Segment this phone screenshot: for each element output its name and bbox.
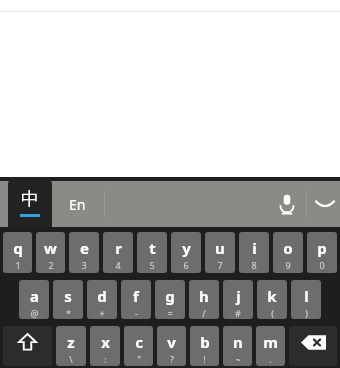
button[interactable]: p (307, 232, 337, 273)
button[interactable]: h (189, 280, 219, 319)
staticText: x (101, 332, 110, 352)
staticText: 0 (319, 259, 325, 271)
staticText: n (233, 332, 243, 352)
button[interactable]: y (171, 232, 201, 273)
staticText: = (167, 307, 173, 319)
button[interactable]: f (121, 280, 151, 319)
staticText: En (69, 195, 86, 214)
staticText: g (165, 286, 175, 306)
button[interactable]: Hide keyboard (310, 181, 340, 227)
staticText: ( (271, 307, 274, 319)
button[interactable]: x (90, 326, 120, 366)
staticText: j (236, 286, 241, 306)
staticText: u (215, 238, 225, 258)
staticText: 中 (21, 188, 39, 211)
staticText: 1 (15, 259, 21, 271)
button[interactable]: a (19, 280, 49, 319)
button[interactable]: Voice input (272, 181, 302, 227)
staticText: 9 (285, 259, 291, 271)
staticText: b (200, 332, 210, 352)
button[interactable]: c (124, 326, 153, 366)
staticText: s (64, 286, 72, 306)
staticText: q (13, 238, 23, 258)
button[interactable]: t (137, 232, 167, 273)
staticText: \ (69, 353, 73, 365)
staticText: + (99, 307, 105, 319)
button[interactable]: g (155, 280, 185, 319)
button[interactable]: j (223, 280, 253, 319)
button[interactable]: n (223, 326, 252, 366)
button[interactable]: s (53, 280, 83, 319)
button[interactable]: z (56, 326, 86, 366)
staticText: @ (30, 307, 39, 319)
staticText: w (44, 238, 57, 258)
button[interactable]: r (103, 232, 133, 273)
staticText: 5 (149, 259, 155, 271)
staticText: / (202, 307, 206, 319)
staticText: o (283, 238, 293, 258)
staticText: 8 (251, 259, 257, 271)
staticText: m (263, 332, 278, 352)
staticText: " (137, 353, 141, 365)
staticText: a (30, 286, 39, 306)
button[interactable]: b (190, 326, 219, 366)
staticText: e (80, 238, 89, 258)
staticText: k (267, 286, 277, 306)
button[interactable]: u (205, 232, 235, 273)
staticText: # (235, 307, 241, 319)
button[interactable]: Backspace (289, 326, 337, 366)
button[interactable]: i (239, 232, 269, 273)
staticText: 4 (115, 259, 121, 271)
button[interactable]: Shift (3, 326, 52, 366)
staticText: ? (170, 353, 174, 365)
staticText: l (304, 286, 309, 306)
button[interactable]: k (257, 280, 287, 319)
button[interactable]: w (36, 232, 65, 273)
button[interactable]: v (157, 326, 186, 366)
button[interactable]: l (291, 280, 321, 319)
staticText: y (182, 238, 191, 258)
staticText: ~ (235, 353, 241, 365)
button[interactable]: o (273, 232, 303, 273)
staticText: f (133, 286, 139, 306)
staticText: 7 (217, 259, 223, 271)
staticText: h (199, 286, 209, 306)
button[interactable]: 中 (8, 177, 52, 227)
staticText: d (97, 286, 107, 306)
staticText: r (115, 238, 122, 258)
staticText: 6 (183, 259, 189, 271)
button[interactable]: e (69, 232, 99, 273)
staticText: * (66, 307, 71, 319)
button[interactable]: m (256, 326, 285, 366)
staticText: . (269, 353, 272, 365)
button[interactable]: En (60, 181, 94, 227)
staticText: : (104, 353, 107, 365)
staticText: i (252, 238, 257, 258)
staticText: 3 (81, 259, 87, 271)
staticText: 2 (48, 259, 54, 271)
staticText: t (149, 238, 156, 258)
staticText: v (167, 332, 176, 352)
staticText: c (135, 332, 143, 352)
button[interactable]: q (3, 232, 32, 273)
button[interactable]: d (87, 280, 117, 319)
staticText: ) (305, 307, 308, 319)
staticText: ! (203, 353, 206, 365)
staticText: p (317, 238, 327, 258)
staticText: - (135, 307, 138, 319)
staticText: z (67, 332, 75, 352)
